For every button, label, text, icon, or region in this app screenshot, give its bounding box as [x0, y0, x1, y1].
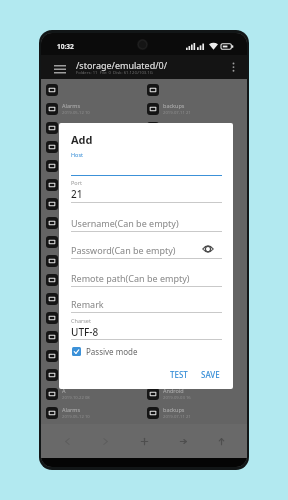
button[interactable]: Podcasts: [147, 327, 244, 346]
staticText: 2019-09-03 16: [163, 395, 191, 401]
button[interactable]: backups: [147, 99, 244, 118]
button[interactable]: DCIM: [46, 118, 143, 137]
staticText: 2019-07-11 21: [163, 414, 191, 420]
staticText: Pictures: [62, 330, 83, 337]
button[interactable]: Up: [208, 428, 234, 454]
staticText: 2019-09-28 16: [62, 338, 90, 344]
button[interactable]: Movies: [147, 289, 244, 308]
button[interactable]: Documents: [147, 270, 244, 289]
staticText: 21: [71, 187, 83, 201]
button[interactable]: DCIM: [46, 270, 143, 289]
button[interactable]: Android: [147, 384, 244, 403]
button[interactable]: Music: [46, 156, 143, 175]
button[interactable]: Menu: [49, 58, 70, 79]
button[interactable]: Add: [131, 428, 157, 454]
staticText: Pictures: [62, 178, 83, 185]
button[interactable]: My Apk: [46, 213, 143, 232]
staticText: A: [62, 387, 66, 394]
staticText: 10:32: [57, 42, 74, 51]
staticText: backups: [163, 102, 185, 109]
button[interactable]: TEST: [165, 367, 193, 382]
button[interactable]: Ringtones: [46, 194, 143, 213]
button[interactable]: Alarms: [46, 403, 143, 422]
staticText: 2019-09-28 16: [62, 186, 90, 192]
button[interactable]: Notifications: [147, 156, 244, 175]
staticText: Alarms: [62, 102, 81, 109]
staticText: Username(Can be empty): [71, 217, 179, 229]
staticText: TEST: [170, 369, 188, 380]
staticText: Android: [163, 387, 184, 394]
staticText: Password(Can be empty): [71, 244, 176, 256]
button[interactable]: SAVE: [196, 367, 225, 382]
staticText: SAVE: [201, 369, 220, 380]
staticText: Remote path(Can be empty): [71, 272, 190, 284]
button[interactable]: Music: [46, 308, 143, 327]
button[interactable]: backups: [147, 251, 244, 270]
button[interactable]: Podcasts: [147, 175, 244, 194]
button[interactable]: Notifications: [147, 308, 244, 327]
staticText: backups: [163, 406, 185, 413]
staticText: Alarms: [62, 254, 81, 261]
staticText: 2019-10-14 23: [163, 376, 191, 382]
staticText: 2019-10-22 08: [62, 243, 90, 249]
button[interactable]: Pictures: [46, 327, 143, 346]
button[interactable]: Download: [46, 289, 143, 308]
staticText: Documents: [163, 273, 193, 280]
staticText: DCIM: [62, 121, 77, 128]
button[interactable]: Pictures: [46, 175, 143, 194]
button[interactable]: Passive mode: [72, 346, 138, 357]
button[interactable]: Pictures: [147, 365, 244, 384]
staticText: Ringtones: [62, 349, 89, 356]
staticText: 2019-10-18 07: [62, 300, 90, 306]
button[interactable]: Show password: [202, 244, 214, 254]
button[interactable]: A: [46, 384, 143, 403]
button[interactable]: [147, 80, 244, 99]
button[interactable]: backups: [147, 403, 244, 422]
button[interactable]: [46, 80, 143, 99]
button[interactable]: A: [46, 232, 143, 251]
staticText: 2019-10-14 09: [62, 281, 90, 287]
button[interactable]: Download: [46, 137, 143, 156]
button[interactable]: Ringtones: [46, 346, 143, 365]
button[interactable]: tencent: [147, 194, 244, 213]
button[interactable]: My Apk: [46, 365, 143, 384]
staticText: 2019-10-22 08: [62, 395, 90, 401]
button[interactable]: Alarms: [46, 99, 143, 118]
button[interactable]: tencent: [147, 346, 244, 365]
button[interactable]: Refresh: [170, 428, 196, 454]
staticText: Documents: [163, 121, 193, 128]
staticText: Add: [71, 132, 93, 147]
button[interactable]: More options: [224, 58, 242, 76]
staticText: Alarms: [62, 406, 81, 413]
button[interactable]: Alarms: [46, 251, 143, 270]
staticText: 2019-05-12 10: [62, 110, 90, 116]
button[interactable]: Pictures: [147, 213, 244, 232]
button[interactable]: Documents: [147, 118, 244, 137]
button[interactable]: Movies: [147, 137, 244, 156]
button[interactable]: Android: [147, 232, 244, 251]
